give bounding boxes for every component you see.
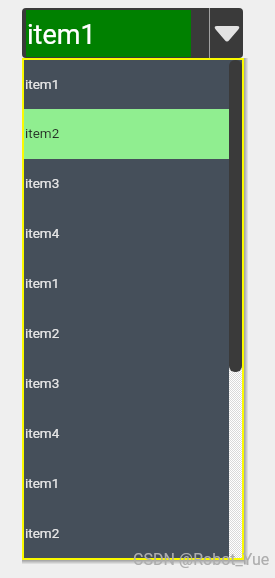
staticText: item2 xyxy=(25,525,60,541)
staticText: item4 xyxy=(25,425,60,441)
staticText: item4 xyxy=(25,225,60,241)
staticText: CSDN @Robot_Yue xyxy=(133,550,270,569)
button[interactable]: item3 xyxy=(24,359,242,409)
button[interactable]: item1 xyxy=(24,60,242,109)
button[interactable]: item4 xyxy=(24,409,242,459)
button[interactable]: item1 xyxy=(24,259,242,309)
staticText: item1 xyxy=(27,19,96,51)
staticText: item1 xyxy=(25,475,60,491)
button[interactable]: item4 xyxy=(24,209,242,259)
button[interactable]: item2 xyxy=(24,509,242,558)
button[interactable]: item2 xyxy=(24,109,242,159)
staticText: item2 xyxy=(25,325,60,341)
button[interactable]: item3 xyxy=(24,159,242,209)
staticText: item3 xyxy=(25,175,60,191)
button[interactable]: item1 xyxy=(24,459,242,509)
button[interactable]: item2 xyxy=(24,309,242,359)
button[interactable]: item1 xyxy=(22,8,243,58)
staticText: item1 xyxy=(25,275,60,291)
other: Open dropdown xyxy=(213,26,241,43)
staticText: item2 xyxy=(25,125,60,141)
staticText: item1 xyxy=(25,76,60,92)
staticText: item3 xyxy=(25,375,60,391)
